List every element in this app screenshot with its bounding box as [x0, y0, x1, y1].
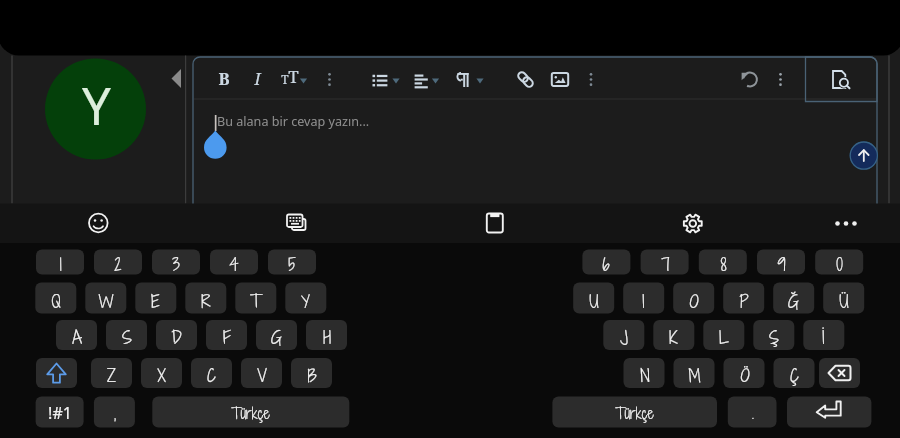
staticText: Ö [740, 363, 750, 387]
button[interactable]: O [673, 285, 714, 316]
button[interactable]: 8 [699, 251, 747, 276]
staticText: 7 [661, 252, 670, 276]
button[interactable]: N [624, 360, 665, 390]
button[interactable]: 7 [641, 251, 689, 276]
button[interactable]: E [135, 285, 176, 316]
button[interactable]: U [573, 285, 614, 316]
button[interactable]: . [728, 398, 777, 429]
staticText: V [257, 363, 267, 387]
button[interactable]: T [235, 285, 276, 316]
button[interactable]: A [56, 322, 97, 352]
staticText: , [114, 405, 116, 424]
button[interactable]: Clipboard [479, 208, 511, 238]
staticText: P [739, 289, 749, 313]
button[interactable]: Preview [806, 57, 878, 102]
staticText: 9 [777, 252, 786, 276]
staticText: Q [51, 289, 61, 313]
button[interactable]: M [674, 360, 715, 390]
staticText: Ş [769, 325, 779, 349]
button[interactable]: 9 [757, 251, 805, 276]
staticText: 3 [172, 252, 180, 276]
button[interactable]: Italic [245, 64, 271, 95]
button[interactable]: Emoji [83, 208, 115, 238]
button[interactable]: 5 [268, 251, 316, 276]
button[interactable]: Text size [275, 64, 313, 95]
button[interactable]: B [291, 360, 332, 390]
button[interactable]: Switch keyboard [281, 208, 313, 238]
staticText: Y [82, 70, 111, 139]
staticText: K [669, 325, 678, 349]
button[interactable]: L [703, 322, 744, 352]
staticText: Y [301, 289, 310, 313]
button[interactable]: Bold [212, 64, 238, 95]
button[interactable]: !#1 [36, 397, 84, 428]
button[interactable]: F [206, 322, 247, 352]
button[interactable]: 0 [815, 251, 863, 276]
button[interactable]: 3 [152, 251, 200, 276]
staticText: Ü [839, 289, 849, 313]
staticText: 8 [720, 252, 727, 276]
staticText: T [288, 65, 299, 88]
button[interactable]: Ğ [773, 285, 814, 316]
button[interactable]: More text options [318, 64, 342, 95]
button[interactable]: Ö [724, 360, 765, 390]
staticText: Ğ [788, 289, 799, 313]
button[interactable]: 1 [36, 251, 84, 276]
button[interactable]: D [156, 322, 197, 352]
button[interactable]: 6 [582, 251, 630, 276]
button[interactable]: I [623, 285, 664, 316]
button[interactable]: Alignment [408, 64, 446, 95]
staticText: E [151, 289, 160, 313]
button[interactable]: Insert image [547, 64, 575, 95]
button[interactable]: Türkçe [152, 397, 349, 428]
button[interactable]: 2 [94, 251, 142, 276]
button[interactable]: J [603, 322, 644, 352]
button[interactable]: P [723, 285, 764, 316]
button[interactable]: Q [35, 285, 76, 316]
button[interactable]: More options [830, 208, 862, 238]
button[interactable]: S [106, 322, 147, 352]
staticText: W [98, 289, 114, 313]
button[interactable]: Z [91, 360, 132, 390]
button[interactable]: H [306, 322, 347, 352]
button[interactable]: Paragraph [448, 64, 490, 95]
staticText: Bu alana bir cevap yazın... [217, 113, 370, 130]
button[interactable]: Y [285, 285, 326, 316]
button[interactable]: More [580, 64, 604, 95]
staticText: I [642, 289, 645, 313]
staticText: L [719, 325, 729, 349]
button[interactable]: İ [803, 322, 844, 352]
staticText: A [72, 325, 82, 349]
button[interactable]: Collapse [171, 66, 187, 90]
button[interactable]: R [185, 285, 226, 316]
button[interactable]: Settings [677, 208, 709, 238]
staticText: G [271, 325, 282, 349]
button[interactable]: Insert link [513, 64, 539, 95]
button[interactable]: List [366, 64, 406, 95]
button[interactable]: Ş [753, 322, 794, 352]
button[interactable]: Send [849, 141, 879, 171]
button[interactable]: Ü [823, 285, 864, 316]
staticText: B [307, 363, 317, 387]
button[interactable]: V [241, 360, 282, 390]
button[interactable]: G [256, 322, 297, 352]
button[interactable]: C [191, 360, 232, 390]
staticText: I [254, 67, 261, 89]
button[interactable]: 4 [210, 251, 258, 276]
button[interactable]: Ç [774, 360, 815, 390]
staticText: J [620, 325, 628, 349]
button[interactable]: Türkçe [552, 397, 717, 428]
button[interactable]: Undo [738, 64, 764, 95]
staticText: B [218, 67, 230, 89]
button[interactable]: , [94, 399, 135, 430]
button[interactable]: W [85, 285, 126, 316]
button[interactable]: K [653, 322, 694, 352]
staticText: N [640, 363, 650, 387]
staticText: Z [107, 363, 116, 387]
staticText: T [281, 71, 289, 87]
button[interactable]: Overflow [769, 64, 793, 95]
button[interactable]: X [141, 360, 182, 390]
staticText: 0 [836, 252, 843, 276]
staticText: C [207, 363, 216, 387]
staticText: D [171, 325, 182, 349]
